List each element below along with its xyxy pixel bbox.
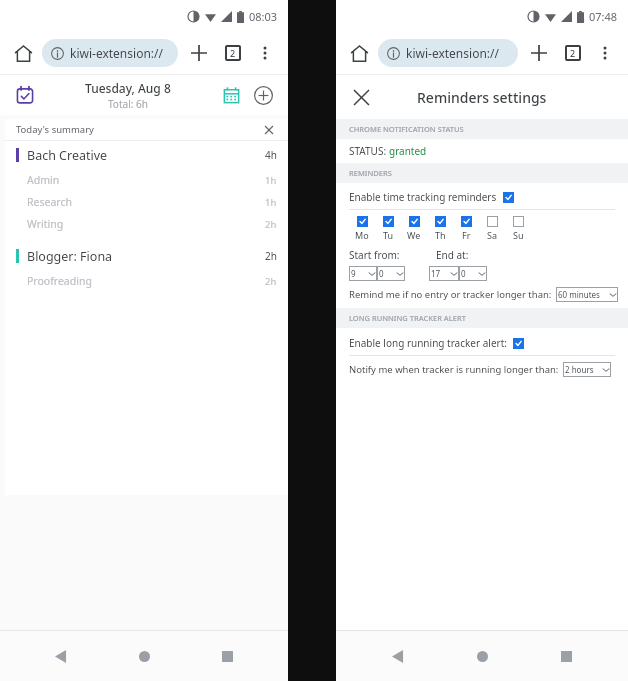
button[interactable]: Back	[39, 634, 83, 678]
button[interactable]: Close	[348, 84, 374, 110]
button[interactable]: 60 minutes	[556, 287, 618, 302]
button[interactable]: Home	[344, 38, 374, 68]
staticText: End at:	[436, 248, 469, 262]
button[interactable]: New tab	[524, 38, 554, 68]
button[interactable]: Home	[460, 634, 504, 678]
button[interactable]: Home	[8, 38, 38, 68]
staticText: 1h	[265, 196, 277, 209]
button[interactable]: kiwi-extension://goleonc	[378, 39, 518, 67]
staticText: 17	[431, 268, 441, 279]
button[interactable]: Research	[5, 191, 288, 213]
staticText: LONG RUNNING TRACKER ALERT	[349, 313, 466, 323]
button[interactable]: Sa	[479, 216, 505, 241]
staticText: 0	[379, 268, 384, 279]
button[interactable]: Home	[122, 634, 166, 678]
button[interactable]: More options	[250, 38, 280, 68]
button[interactable]: Tabs	[218, 38, 248, 68]
staticText: Remind me if no entry or tracker longer …	[349, 288, 552, 301]
staticText: Enable time tracking reminders	[349, 190, 497, 204]
staticText: CHROME NOTIFICATION STATUS	[349, 124, 464, 134]
staticText: REMINDERS	[349, 168, 392, 178]
staticText: granted	[389, 144, 427, 158]
button[interactable]: Su	[505, 216, 531, 241]
staticText: Th	[435, 229, 446, 241]
button[interactable]: Calendar	[218, 82, 244, 108]
staticText: Today's summary	[16, 123, 94, 136]
staticText: STATUS:	[349, 144, 389, 158]
staticText: 2	[570, 47, 576, 59]
staticText: 4h	[265, 148, 277, 162]
button[interactable]: Writing	[5, 213, 288, 235]
button[interactable]: More options	[590, 38, 620, 68]
button[interactable]: Enable long running tracker alert:	[349, 336, 628, 350]
staticText: 9	[351, 268, 356, 279]
button[interactable]: Th	[427, 216, 453, 241]
button[interactable]: Today	[12, 82, 38, 108]
staticText: Admin	[27, 173, 60, 187]
staticText: Proofreading	[27, 274, 92, 288]
staticText: Notify me when tracker is running longer…	[349, 363, 559, 376]
staticText: kiwi-extension://goleonc	[406, 45, 509, 61]
staticText: 07:48	[589, 9, 618, 24]
button[interactable]: Add entry	[250, 82, 276, 108]
button[interactable]: kiwi-extension://goleonc	[42, 39, 178, 67]
button[interactable]: 0	[377, 266, 405, 281]
button[interactable]: Mo	[349, 216, 375, 241]
button[interactable]: 9	[349, 266, 377, 281]
button[interactable]: Recents	[205, 634, 249, 678]
button[interactable]: Close	[261, 122, 277, 138]
staticText: Tuesday, Aug 8	[85, 80, 171, 96]
button[interactable]: Back	[376, 634, 420, 678]
button[interactable]: Bach Creative	[5, 141, 288, 169]
button[interactable]: We	[401, 216, 427, 241]
button[interactable]: 0	[459, 266, 487, 281]
button[interactable]: Recents	[544, 634, 588, 678]
staticText: 60 minutes	[558, 289, 600, 300]
button[interactable]: Enable time tracking reminders	[349, 190, 615, 204]
staticText: Mo	[355, 229, 369, 241]
button[interactable]: Tabs	[558, 38, 588, 68]
button[interactable]: Admin	[5, 169, 288, 191]
staticText: 2 hours	[565, 364, 594, 375]
button[interactable]: Proofreading	[5, 270, 288, 292]
staticText: 2h	[265, 249, 277, 263]
button[interactable]: Tu	[375, 216, 401, 241]
staticText: 1h	[265, 174, 277, 187]
staticText: 08:03	[249, 9, 278, 24]
button[interactable]: New tab	[184, 38, 214, 68]
staticText: Reminders settings	[417, 88, 547, 107]
staticText: Writing	[27, 217, 64, 231]
staticText: Research	[27, 195, 72, 209]
button[interactable]: 17	[429, 266, 459, 281]
staticText: Total: 6h	[108, 97, 148, 111]
staticText: Fr	[462, 229, 471, 241]
staticText: 0	[461, 268, 466, 279]
button[interactable]: 2 hours	[563, 362, 611, 377]
staticText: Enable long running tracker alert:	[349, 336, 507, 350]
staticText: Start from:	[349, 248, 400, 262]
staticText: kiwi-extension://goleonc	[70, 45, 169, 61]
staticText: Blogger: Fiona	[27, 248, 113, 265]
staticText: Bach Creative	[27, 147, 108, 164]
staticText: 2h	[265, 275, 277, 288]
staticText: We	[407, 229, 421, 241]
staticText: Sa	[487, 229, 497, 241]
staticText: 2	[230, 47, 236, 59]
staticText: 2h	[265, 218, 277, 231]
staticText: Tu	[383, 229, 394, 241]
staticText: Su	[513, 229, 524, 241]
button[interactable]: Blogger: Fiona	[5, 242, 288, 270]
button[interactable]: Fr	[453, 216, 479, 241]
